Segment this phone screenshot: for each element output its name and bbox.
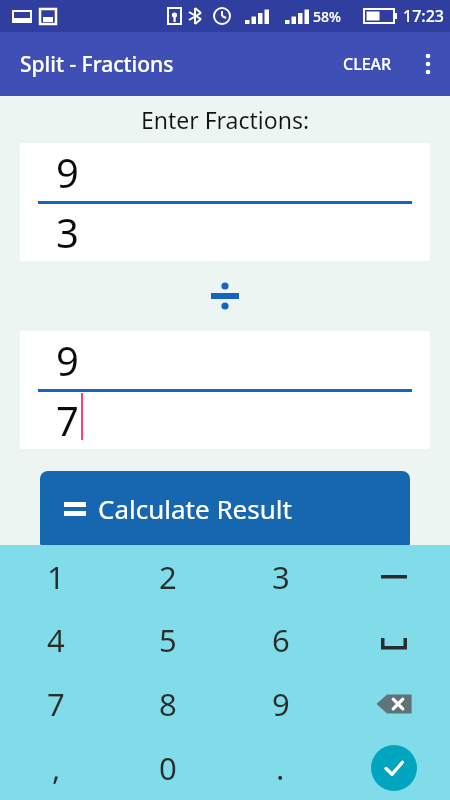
button[interactable]: space — [337, 608, 450, 672]
staticText: 3 — [56, 205, 79, 259]
staticText: 8 — [159, 683, 177, 725]
button[interactable]: minus — [337, 545, 450, 608]
staticText: 9 — [56, 333, 79, 387]
staticText: 6 — [272, 619, 290, 661]
staticText: 9 — [272, 683, 290, 725]
staticText: Calculate Result — [98, 491, 292, 526]
staticText: 7 — [47, 683, 65, 725]
staticText: 9 — [56, 145, 79, 199]
staticText: 4 — [47, 619, 65, 661]
button[interactable]: . — [224, 736, 337, 800]
button[interactable]: 2 — [112, 545, 224, 608]
button[interactable]: More options — [406, 42, 450, 86]
staticText: Split - Fractions — [20, 50, 174, 79]
button[interactable]: Calculate Result — [40, 471, 410, 551]
button[interactable]: , — [0, 736, 112, 800]
staticText: CLEAR — [343, 53, 392, 75]
button[interactable]: ok — [337, 736, 450, 800]
button[interactable]: 7 — [0, 672, 112, 736]
button[interactable]: 0 — [112, 736, 224, 800]
staticText: 2 — [159, 556, 177, 598]
staticText: 58% — [313, 7, 341, 26]
button[interactable]: 9 — [20, 143, 430, 261]
staticText: 7 — [56, 393, 79, 447]
button[interactable]: 9 — [224, 672, 337, 736]
button[interactable]: CLEAR — [333, 45, 402, 83]
button[interactable]: 3 — [224, 545, 337, 608]
button[interactable]: 8 — [112, 672, 224, 736]
button[interactable]: back — [337, 672, 450, 736]
button[interactable]: 1 — [0, 545, 112, 608]
staticText: 17:23 — [403, 5, 444, 27]
staticText: 0 — [159, 747, 177, 789]
staticText: Enter Fractions: — [0, 104, 450, 135]
staticText: 5 — [159, 619, 177, 661]
button[interactable]: 6 — [224, 608, 337, 672]
button[interactable]: 5 — [112, 608, 224, 672]
staticText: , — [52, 747, 61, 789]
button[interactable]: 4 — [0, 608, 112, 672]
staticText: 3 — [272, 556, 290, 598]
staticText: . — [276, 747, 285, 789]
staticText: 1 — [47, 556, 65, 598]
button[interactable]: 9 — [20, 331, 430, 449]
